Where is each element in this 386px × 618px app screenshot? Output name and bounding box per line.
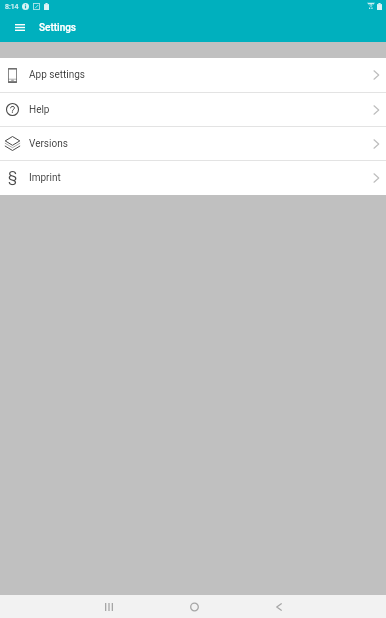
staticText: App settings — [29, 69, 85, 81]
button[interactable]: Help — [0, 93, 386, 126]
staticText: § — [8, 168, 18, 186]
button[interactable]: Back — [253, 595, 304, 618]
staticText: Versions — [29, 138, 68, 150]
button[interactable]: Recent apps — [83, 595, 134, 618]
button[interactable]: § — [0, 161, 386, 195]
staticText: Imprint — [29, 172, 61, 184]
staticText: 8:14 — [5, 3, 19, 11]
staticText: Help — [29, 104, 50, 116]
staticText: Settings — [39, 22, 77, 34]
button[interactable]: App settings — [0, 58, 386, 92]
button[interactable]: Open navigation menu — [5, 14, 34, 40]
button[interactable]: Versions — [0, 127, 386, 160]
button[interactable]: Home — [168, 595, 219, 618]
